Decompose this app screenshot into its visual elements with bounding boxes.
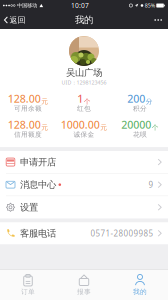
staticText: 个	[152, 123, 159, 132]
staticText: 个	[84, 97, 91, 106]
staticText: 诚保金	[73, 130, 94, 139]
staticText: 消息中心	[20, 179, 56, 190]
staticText: 报事	[77, 288, 91, 296]
button[interactable]: 申请开店	[0, 151, 168, 173]
staticText: 积分	[133, 104, 147, 113]
staticText: 元	[41, 97, 48, 106]
staticText: 1000.00	[61, 117, 100, 132]
staticText: 中国移动	[17, 2, 37, 9]
staticText: 20000	[121, 117, 151, 132]
button[interactable]: 返回	[0, 11, 30, 29]
staticText: 128.00	[8, 91, 41, 106]
staticText: 我的	[75, 14, 93, 26]
staticText: 返回	[9, 15, 25, 25]
staticText: 订单	[21, 288, 35, 296]
button[interactable]: 报事	[56, 270, 112, 300]
staticText: 申请开店	[20, 156, 56, 168]
staticText: UID：1298123456	[61, 79, 106, 86]
staticText: 红包	[77, 104, 91, 113]
button[interactable]: 订单	[0, 270, 56, 300]
staticText: 85%	[145, 2, 155, 9]
button[interactable]: More	[148, 11, 168, 29]
staticText: 10:07	[71, 1, 89, 10]
staticText: 9	[149, 179, 154, 190]
staticText: 信用额度	[14, 130, 42, 139]
button[interactable]: 客服电话	[0, 222, 168, 244]
staticText: 128.00	[8, 117, 41, 132]
staticText: 1	[77, 91, 83, 106]
button[interactable]: 我的	[112, 270, 168, 300]
button[interactable]: 消息中心	[0, 174, 168, 196]
staticText: 我的	[133, 288, 147, 296]
staticText: 元	[100, 123, 107, 132]
staticText: 分	[146, 97, 153, 106]
staticText: 元	[41, 123, 48, 132]
staticText: 客服电话	[20, 227, 56, 239]
staticText: 0571-28009985	[91, 228, 154, 239]
staticText: 200	[127, 91, 145, 106]
staticText: 花呗	[133, 130, 147, 139]
staticText: 设置	[20, 201, 38, 213]
button[interactable]: 设置	[0, 196, 168, 218]
staticText: 可用余额	[14, 104, 42, 113]
staticText: 吴山广场	[66, 67, 102, 78]
